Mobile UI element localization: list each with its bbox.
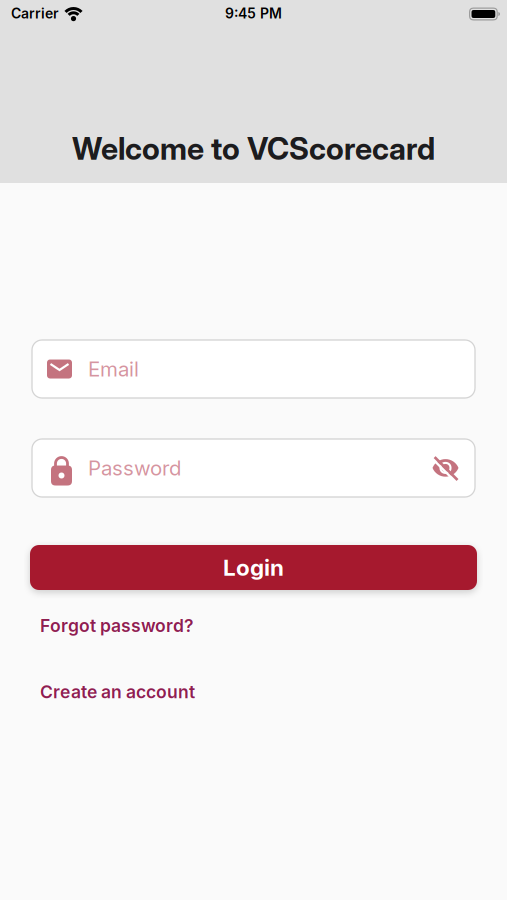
button[interactable]: Show password (432, 454, 459, 481)
staticText: Login (223, 554, 284, 581)
staticText: Email (88, 357, 139, 381)
button[interactable]: Forgot password? (40, 615, 194, 636)
staticText: Carrier (11, 5, 59, 22)
staticText: Create an account (40, 681, 195, 702)
button[interactable]: Password (32, 439, 475, 497)
staticText: 9:45 PM (225, 5, 282, 22)
staticText: Welcome to VCScorecard (72, 130, 435, 167)
staticText: Password (88, 456, 181, 480)
button[interactable]: Login (30, 545, 477, 590)
button[interactable]: Create an account (40, 681, 195, 702)
button[interactable]: Email (32, 340, 475, 398)
staticText: Forgot password? (40, 615, 194, 636)
